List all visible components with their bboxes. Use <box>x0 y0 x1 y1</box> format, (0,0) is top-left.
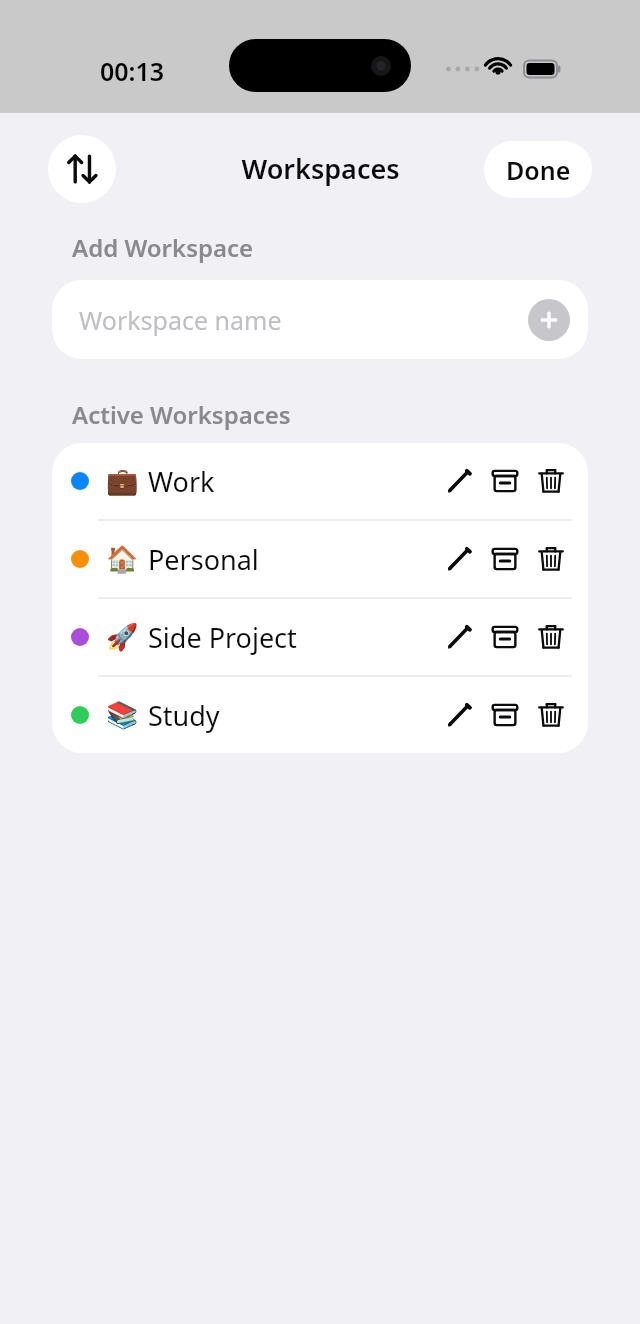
button[interactable]: 🚀 <box>52 599 588 675</box>
staticText: Workspaces <box>241 150 400 187</box>
staticText: Active Workspaces <box>72 398 291 431</box>
button[interactable]: Delete Personal <box>534 542 568 576</box>
button[interactable]: Delete Side Project <box>534 620 568 654</box>
staticText: Add Workspace <box>72 231 254 264</box>
button[interactable]: Edit Side Project <box>442 620 476 654</box>
staticText: Work <box>148 463 215 500</box>
button[interactable]: Done <box>484 141 592 198</box>
button[interactable]: Archive Personal <box>488 542 522 576</box>
staticText: 🏠 <box>106 544 139 574</box>
button[interactable]: 📚 <box>52 677 588 753</box>
button[interactable]: Archive Work <box>488 464 522 498</box>
button[interactable]: Delete Study <box>534 698 568 732</box>
button[interactable]: Edit Work <box>442 464 476 498</box>
staticText: Done <box>506 153 571 187</box>
button[interactable]: 🏠 <box>52 521 588 597</box>
button[interactable]: Workspace name <box>52 280 588 359</box>
staticText: Workspace name <box>79 303 282 337</box>
button[interactable]: Add workspace <box>528 299 570 341</box>
button[interactable]: Archive Study <box>488 698 522 732</box>
staticText: 📚 <box>106 700 139 730</box>
staticText: 💼 <box>106 466 139 496</box>
staticText: Study <box>148 697 220 734</box>
staticText: 00:13 <box>100 54 165 88</box>
button[interactable]: Edit Personal <box>442 542 476 576</box>
staticText: Personal <box>148 541 259 578</box>
button[interactable]: Edit Study <box>442 698 476 732</box>
staticText: Side Project <box>148 619 297 656</box>
button[interactable]: Sort workspaces <box>48 135 116 203</box>
button[interactable]: 💼 <box>52 443 588 519</box>
button[interactable]: Delete Work <box>534 464 568 498</box>
staticText: 🚀 <box>106 622 139 652</box>
button[interactable]: Archive Side Project <box>488 620 522 654</box>
